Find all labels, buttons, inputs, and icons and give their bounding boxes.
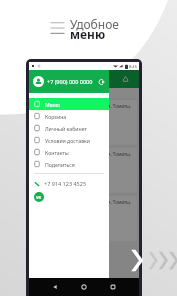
staticText: Удобное (70, 16, 119, 32)
other: Recents (110, 284, 116, 290)
button[interactable]: Набор для суши, Томаты, огурец, Дайкон м… (31, 148, 137, 193)
staticText: Изменить (81, 90, 108, 97)
button[interactable]: Условия доставки (29, 134, 109, 146)
staticText: Контакты (45, 149, 69, 156)
button[interactable]: Изменить (29, 88, 139, 98)
staticText: Купить (85, 168, 101, 174)
button[interactable]: Личный кабинет (29, 122, 109, 134)
staticText: меню (70, 26, 106, 42)
staticText: Условия доставки (45, 137, 91, 144)
staticText: Набор для суши, Томаты, огурец, Дайкон м… (74, 151, 134, 163)
staticText: Набор для суши, Томаты, огурец, Дайкон м… (74, 199, 134, 211)
staticText: Набор для суши, Томаты, огурец, Дайкон м… (74, 103, 134, 115)
button[interactable]: VK (34, 192, 44, 202)
button[interactable]: Набор для суши, Томаты, огурец, Дайкон м… (31, 196, 137, 241)
staticText: VK (36, 195, 42, 200)
staticText: Корзина (45, 113, 67, 120)
button[interactable]: Menu (50, 20, 66, 35)
button[interactable]: Меню (29, 98, 109, 110)
staticText: 8:46 (129, 64, 137, 69)
button[interactable]: Поделиться (29, 158, 109, 170)
button[interactable]: Корзина (29, 110, 109, 122)
button[interactable]: Набор для суши, Томаты, огурец, Дайкон м… (31, 100, 137, 145)
button[interactable]: +7 (900) 000 0000 (29, 70, 109, 93)
other: Notifications (122, 76, 129, 83)
staticText: Поделиться (45, 161, 75, 168)
staticText: Личный кабинет (45, 125, 87, 132)
other: Back (52, 284, 58, 290)
other: Log out (99, 79, 105, 85)
staticText: Меню (45, 101, 60, 108)
button[interactable]: +7 914 123 4525 (29, 180, 109, 187)
staticText: +7 914 123 4525 (44, 180, 87, 187)
button[interactable]: Контакты (29, 146, 109, 158)
button[interactable]: Купить (81, 166, 104, 175)
staticText: +7 (900) 000 0000 (47, 78, 93, 85)
other: Home (81, 284, 87, 290)
